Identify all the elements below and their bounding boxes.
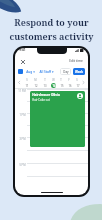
- button[interactable]: All Staff ▾: [38, 70, 55, 74]
- staticText: W: [52, 78, 55, 82]
- staticText: 14: [52, 84, 56, 88]
- staticText: S: [76, 78, 78, 82]
- button[interactable]: Calendar: [18, 69, 23, 74]
- button[interactable]: Previous week: [17, 80, 22, 85]
- staticText: 17: [76, 84, 80, 88]
- staticText: T: [60, 78, 62, 82]
- button[interactable]: Hairdresser Olivia: [30, 91, 85, 147]
- button[interactable]: Week: [73, 68, 85, 75]
- button[interactable]: F: [65, 77, 73, 88]
- button[interactable]: Edit time: [68, 58, 84, 64]
- button[interactable]: T: [40, 77, 49, 88]
- button[interactable]: W: [49, 77, 57, 88]
- staticText: S: [26, 78, 28, 82]
- button[interactable]: Aug ▾: [25, 70, 36, 74]
- staticText: Week: [75, 70, 83, 74]
- staticText: All Staff ▾: [39, 70, 54, 74]
- button[interactable]: Next week: [81, 80, 86, 85]
- staticText: T: [44, 78, 46, 82]
- staticText: 12: [34, 84, 38, 88]
- staticText: F: [68, 78, 70, 82]
- staticText: Respond to your: [14, 16, 89, 28]
- button[interactable]: S: [73, 77, 81, 88]
- button[interactable]: T: [57, 77, 65, 88]
- staticText: 16: [68, 84, 72, 88]
- button[interactable]: M: [31, 77, 40, 88]
- staticText: customers activity: [9, 30, 94, 42]
- button[interactable]: Close: [19, 58, 26, 65]
- staticText: 9:41: [19, 48, 26, 52]
- staticText: 1 PM: [19, 113, 26, 117]
- staticText: M: [34, 78, 37, 82]
- staticText: 11: [25, 84, 29, 88]
- staticText: Hairdresser Olivia: [32, 93, 60, 97]
- staticText: 15: [60, 84, 64, 88]
- staticText: Day: [63, 70, 69, 74]
- staticText: 11 PM: [18, 89, 26, 93]
- button[interactable]: S: [22, 77, 31, 88]
- staticText: 13: [43, 84, 47, 88]
- button[interactable]: Day: [60, 68, 71, 75]
- staticText: 3 PM: [19, 137, 26, 141]
- staticText: Edit time: [69, 59, 83, 63]
- staticText: Hair Color cut: [32, 98, 50, 102]
- staticText: 5 PM: [19, 163, 26, 167]
- staticText: Aug ▾: [26, 70, 35, 74]
